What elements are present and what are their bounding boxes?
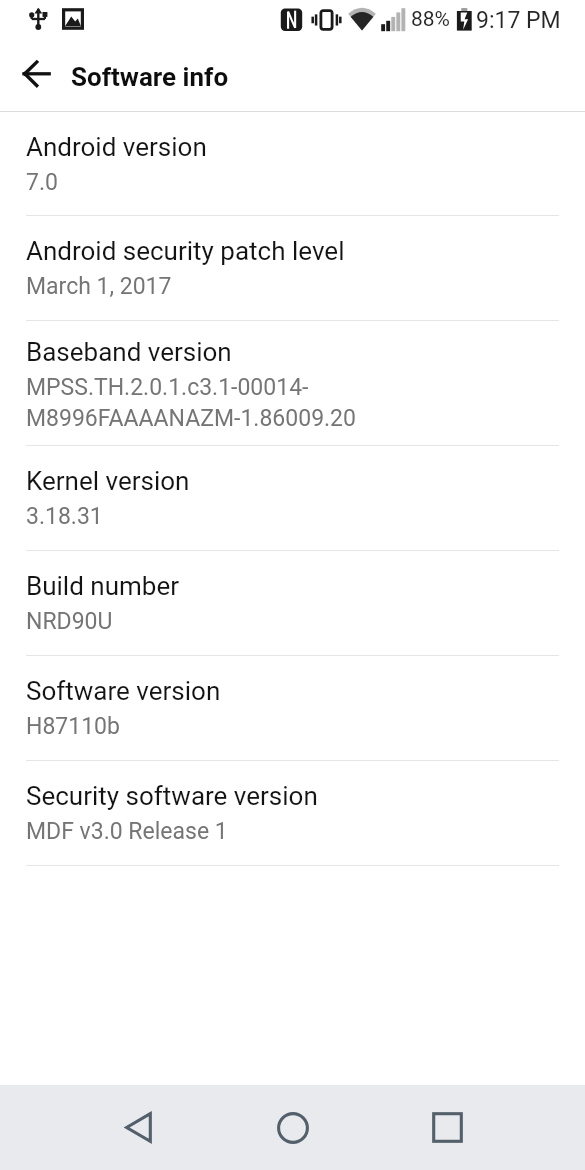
button[interactable]: Back (95, 1085, 181, 1170)
staticText: Baseband version (26, 337, 232, 367)
button[interactable]: Android version (0, 112, 585, 216)
button[interactable]: Recent apps (404, 1085, 490, 1170)
staticText: March 1, 2017 (26, 273, 172, 300)
button[interactable]: Home (250, 1085, 336, 1170)
staticText: NRD90U (26, 608, 113, 635)
staticText: Build number (26, 571, 179, 601)
staticText: MDF v3.0 Release 1 (26, 818, 228, 845)
staticText: Kernel version (26, 466, 190, 496)
staticText: 7.0 (26, 169, 58, 196)
staticText: H87110b (26, 713, 120, 740)
staticText: Software info (71, 62, 229, 92)
button[interactable]: Build number (0, 551, 585, 656)
staticText: MPSS.TH.2.0.1.c3.1-00014- M8996FAAAANAZM… (26, 374, 356, 431)
staticText: Software version (26, 676, 221, 706)
button[interactable]: Android security patch level (0, 216, 585, 321)
staticText: 3.18.31 (26, 503, 103, 530)
staticText: 9:17 PM (476, 7, 561, 34)
staticText: Security software version (26, 781, 318, 811)
button[interactable]: Baseband version (0, 321, 585, 446)
button[interactable]: Kernel version (0, 446, 585, 551)
button[interactable]: Security software version (0, 761, 585, 866)
button[interactable]: Software version (0, 656, 585, 761)
staticText: 88% (411, 7, 450, 32)
staticText: Android version (26, 132, 207, 162)
button[interactable]: Navigate up (8, 42, 64, 111)
staticText: Android security patch level (26, 236, 345, 266)
